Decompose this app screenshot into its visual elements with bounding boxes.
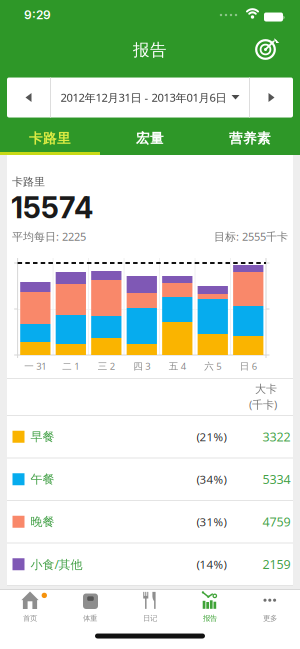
staticText: 5334 [262,471,290,488]
staticText: 一 31 [24,359,46,372]
staticText: 4759 [262,513,290,530]
staticText: (14%) [196,556,226,572]
button[interactable]: 下一周 [250,77,293,117]
staticText: 早餐 [30,429,54,444]
staticText: 平均每日: 2225 [12,229,86,244]
button[interactable]: 目标 [255,37,280,62]
staticText: (21%) [196,429,226,445]
button[interactable]: 小食/其他 [7,543,293,585]
staticText: 日记 [143,613,157,623]
staticText: 15574 [11,190,93,225]
staticText: 报告 [133,40,167,60]
staticText: 大卡 [255,382,277,396]
staticText: 卡路里 [12,175,45,189]
staticText: 2159 [262,556,290,573]
staticText: 3322 [262,428,290,445]
button[interactable]: 体重 [60,591,120,627]
button[interactable]: 更多 [240,591,300,627]
staticText: (34%) [196,471,226,487]
button[interactable]: 卡路里 [0,125,100,152]
staticText: (千卡) [249,397,277,412]
staticText: (31%) [196,514,226,530]
staticText: 午餐 [30,472,54,487]
staticText: 9:29 [24,8,51,22]
staticText: 更多 [263,613,277,623]
staticText: 二 1 [62,359,79,372]
button[interactable]: 营养素 [200,125,300,152]
staticText: 日 6 [240,359,257,372]
staticText: 小食/其他 [30,556,82,572]
button[interactable]: 日记 [120,591,180,627]
staticText: 卡路里 [29,130,71,147]
button[interactable]: 宏量 [100,125,200,152]
button[interactable]: 午餐 [7,458,293,500]
staticText: 目标: 2555千卡 [214,229,288,244]
staticText: 首页 [23,613,37,623]
staticText: 营养素 [229,130,271,147]
staticText: 六 5 [204,359,221,372]
staticText: 2012年12月31日 - 2013年01月6日 [60,90,226,105]
button[interactable]: 选择日期范围 [51,77,249,117]
button[interactable]: 早餐 [7,416,293,457]
staticText: 四 3 [133,359,150,372]
staticText: 晚餐 [30,514,54,529]
button[interactable]: 首页 [0,591,60,627]
staticText: 宏量 [136,130,164,147]
staticText: 体重 [83,613,97,623]
staticText: 五 4 [169,359,186,372]
staticText: 报告 [203,613,217,623]
staticText: 三 2 [98,359,115,372]
button[interactable]: 报告 [180,591,240,627]
button[interactable]: 晚餐 [7,501,293,542]
button[interactable]: 上一周 [7,77,50,117]
